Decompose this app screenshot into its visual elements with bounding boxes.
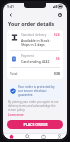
staticText: Your order is protected by our secure ch… <box>18 85 60 97</box>
staticText: 9:41 <box>7 4 14 9</box>
staticText: $30 <box>54 71 60 76</box>
button[interactable]: Orders <box>35 134 51 139</box>
button[interactable]: Standard delivery <box>7 30 63 50</box>
staticText: Learn more <box>8 113 24 117</box>
button[interactable]: Search <box>19 134 35 139</box>
staticText: Your order details <box>8 20 55 27</box>
staticText: Total <box>10 72 18 76</box>
button[interactable]: Payment <box>7 51 63 67</box>
button[interactable]: Learn more <box>8 113 24 117</box>
staticText: $24 <box>54 33 60 37</box>
button[interactable]: Profile <box>51 134 67 139</box>
button[interactable]: Home <box>3 134 19 139</box>
staticText: PLACE ORDER <box>23 122 48 127</box>
staticText: Payment <box>21 54 34 58</box>
button[interactable]: Help <box>56 11 63 18</box>
button[interactable]: Your order is protected by our secure ch… <box>7 82 63 100</box>
staticText: Standard delivery <box>21 33 47 37</box>
button[interactable]: PLACE ORDER <box>7 120 63 129</box>
staticText: Card ending 4242 <box>21 59 50 64</box>
button[interactable]: Back <box>7 11 14 18</box>
staticText: By placing your order you agree to our d… <box>8 100 62 112</box>
staticText: Available in Stock · Ships in 2 days <box>21 38 52 47</box>
staticText: $6 <box>56 57 60 61</box>
